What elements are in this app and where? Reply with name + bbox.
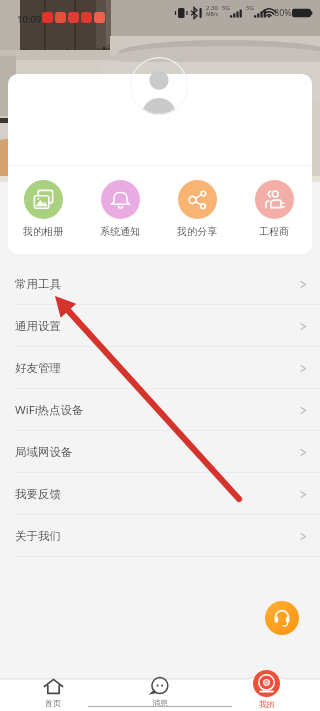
button[interactable]: 我的	[213, 671, 320, 709]
staticText: 系统通知	[100, 225, 140, 238]
button[interactable]: 通用设置	[0, 305, 320, 347]
staticText: 好友管理	[15, 361, 61, 375]
button[interactable]: 首页	[0, 671, 106, 708]
staticText: 我的	[259, 699, 275, 709]
button[interactable]: 我要反馈	[0, 473, 320, 515]
button[interactable]: 消息	[106, 671, 213, 708]
button[interactable]: WiFi热点设备	[0, 389, 320, 431]
button[interactable]: 好友管理	[0, 347, 320, 389]
staticText: 5G	[222, 4, 230, 12]
staticText: MB/s	[206, 11, 219, 18]
button[interactable]: 常用工具	[0, 263, 320, 305]
button[interactable]: 系统通知	[87, 180, 153, 238]
button[interactable]: 我的分享	[164, 180, 230, 238]
staticText: 局域网设备	[15, 445, 73, 459]
staticText: 5G	[246, 4, 254, 12]
staticText: 2.30	[206, 4, 218, 12]
staticText: 80%	[274, 6, 292, 18]
staticText: WiFi热点设备	[15, 402, 84, 418]
button[interactable]: 在线客服	[265, 601, 299, 635]
staticText: 消息	[152, 698, 168, 708]
staticText: 我的相册	[23, 225, 63, 238]
button[interactable]: 局域网设备	[0, 431, 320, 473]
staticText: 关于我们	[15, 529, 61, 543]
staticText: 工程商	[259, 225, 289, 238]
staticText: 10:09	[17, 13, 42, 26]
button[interactable]: 我的相册	[10, 180, 76, 238]
staticText: 常用工具	[15, 277, 61, 291]
staticText: 通用设置	[15, 319, 61, 333]
staticText: 我要反馈	[15, 487, 61, 501]
staticText: 我的分享	[177, 225, 217, 238]
button[interactable]: 关于我们	[0, 515, 320, 557]
button[interactable]: 工程商	[241, 180, 307, 238]
staticText: 首页	[45, 698, 61, 708]
